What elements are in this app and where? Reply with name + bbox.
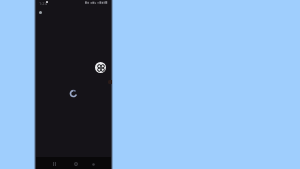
button[interactable]: Recent apps bbox=[49, 159, 60, 169]
button[interactable]: Apps bbox=[95, 62, 106, 73]
staticText: 1:24 bbox=[39, 1, 47, 6]
button[interactable]: Back bbox=[88, 159, 99, 169]
button[interactable]: Home bbox=[70, 159, 81, 169]
